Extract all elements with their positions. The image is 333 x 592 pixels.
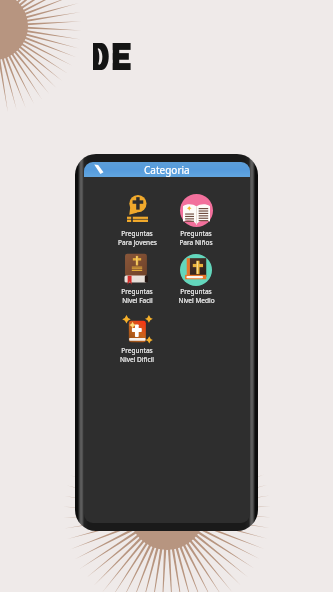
- button[interactable]: Preguntas: [107, 251, 167, 305]
- other: DE: [93, 43, 131, 70]
- staticText: Preguntas: [180, 287, 212, 296]
- button[interactable]: Preguntas: [166, 193, 226, 247]
- button[interactable]: Preguntas: [107, 193, 167, 247]
- button[interactable]: Preguntas: [107, 310, 167, 364]
- staticText: Para Niños: [179, 238, 213, 247]
- staticText: Para Jovenes: [118, 238, 157, 247]
- staticText: Nivel Dificil: [120, 355, 154, 364]
- staticText: Categoria: [144, 163, 190, 177]
- staticText: Nivel Facil: [122, 296, 153, 305]
- staticText: Preguntas: [121, 346, 153, 355]
- button[interactable]: Preguntas: [166, 251, 226, 305]
- staticText: Preguntas: [121, 229, 153, 238]
- staticText: Nivel Medio: [178, 296, 215, 305]
- staticText: Preguntas: [180, 229, 212, 238]
- staticText: Preguntas: [121, 287, 153, 296]
- button[interactable]: Back: [88, 162, 106, 177]
